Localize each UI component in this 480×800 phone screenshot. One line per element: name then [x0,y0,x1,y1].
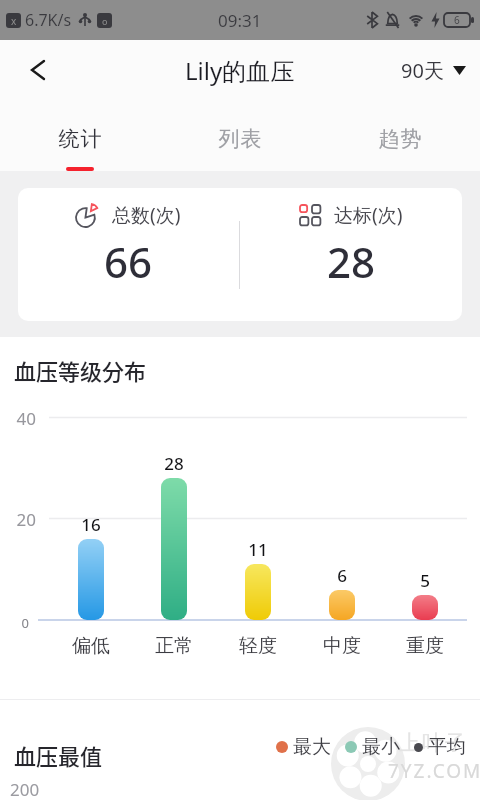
staticText: 趋势 [378,126,422,152]
staticText: 28 [327,233,376,290]
staticText: 6 [454,13,460,27]
staticText: 66 [104,233,153,290]
staticText: o [102,15,108,27]
staticText: 统计 [58,126,102,152]
staticText: 达标(次) [334,202,403,228]
button[interactable]: 列表 [160,100,320,171]
staticText: 200 [10,778,40,800]
staticText: 偏低 [56,634,126,658]
staticText: 16 [66,513,116,536]
staticText: 上叶子 [398,730,467,756]
staticText: 最小 [362,735,400,759]
button[interactable]: 统计 [0,100,160,171]
staticText: 列表 [218,126,262,152]
staticText: 血压等级分布 [14,354,147,386]
button[interactable]: 达标(次) [240,188,462,321]
button[interactable] [20,52,56,88]
staticText: 09:31 [218,9,262,32]
staticText: 最大 [293,735,331,759]
staticText: 28 [149,452,199,475]
staticText: 7YZ.COM [388,758,480,784]
staticText: 11 [233,538,283,561]
staticText: x [11,14,17,28]
button[interactable]: 趋势 [320,100,480,171]
staticText: 6 [317,564,367,587]
staticText: 轻度 [223,634,293,658]
button[interactable]: 总数(次) [18,188,239,321]
staticText: 90天 [401,57,444,84]
staticText: 血压最值 [14,739,103,771]
button[interactable]: 90天 [401,57,466,84]
staticText: 40 [4,407,36,430]
staticText: 平均 [428,735,466,759]
staticText: 正常 [139,634,209,658]
staticText: 重度 [390,634,460,658]
staticText: 5 [400,569,450,592]
staticText: Lily的血压 [185,54,295,87]
staticText: 6.7K/s [25,9,72,31]
staticText: 中度 [307,634,377,658]
staticText: 总数(次) [112,202,181,228]
staticText: 20 [4,508,36,531]
staticText: 0 [4,614,29,632]
